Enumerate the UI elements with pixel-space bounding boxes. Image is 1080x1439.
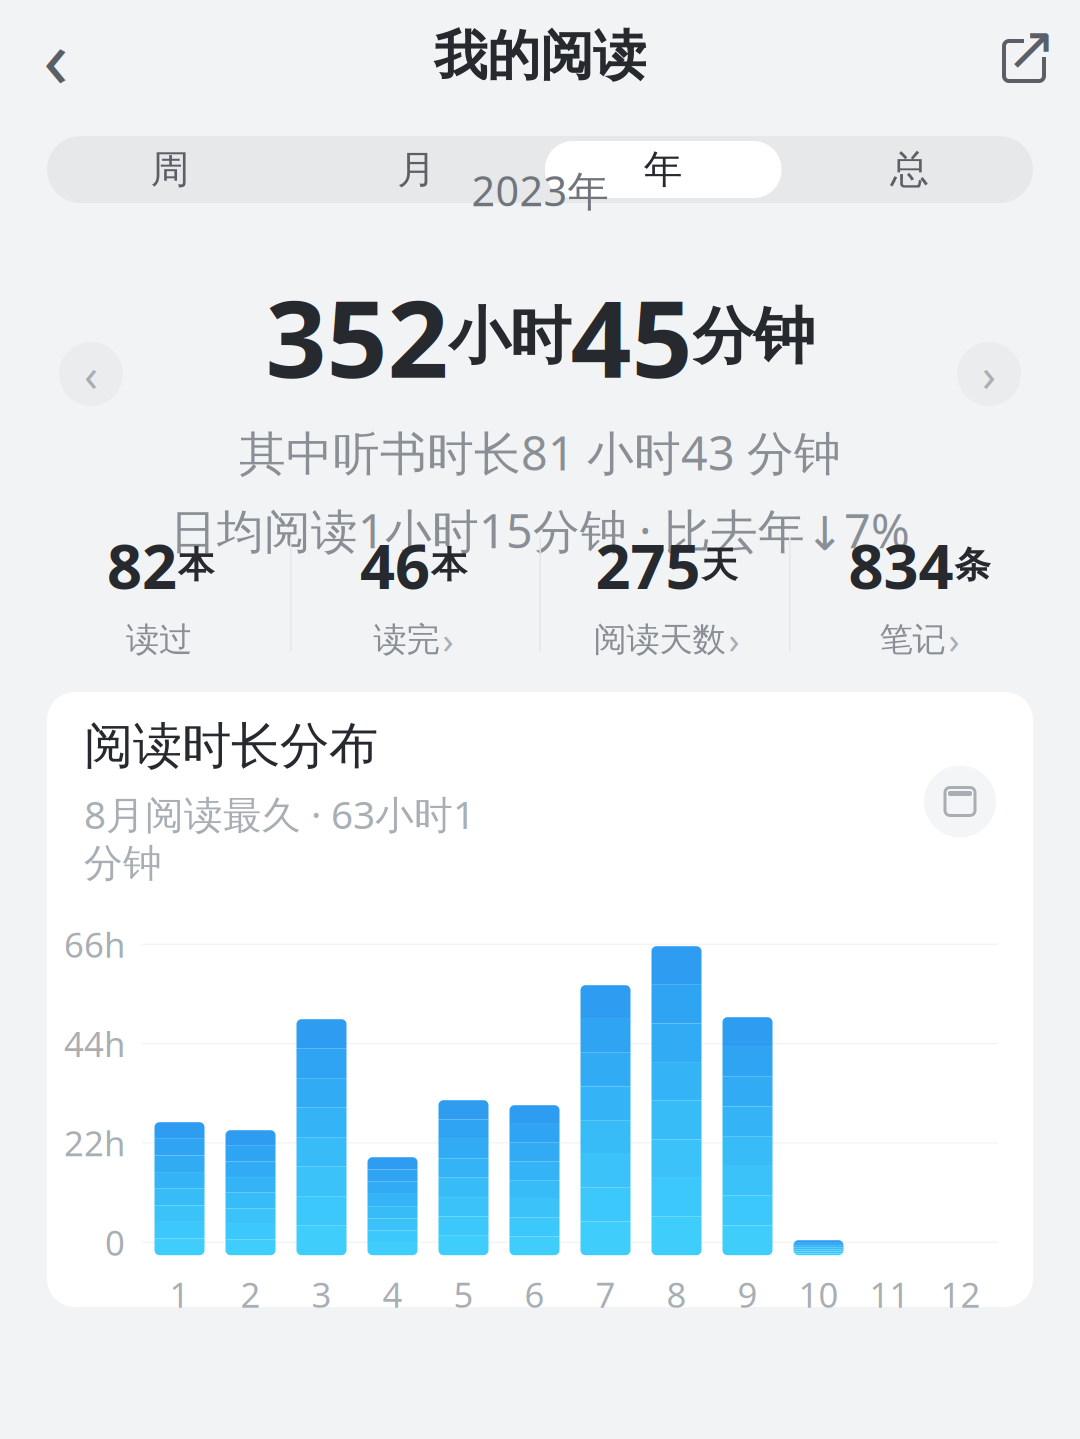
staticText: 46 (360, 524, 430, 606)
button[interactable]: Previous year (59, 342, 123, 406)
staticText: 6 (524, 1271, 544, 1317)
staticText: 阅读时长分布 (84, 716, 378, 776)
staticText: 年 (644, 146, 683, 193)
staticText: 本 (431, 543, 467, 587)
staticText: 12 (940, 1271, 980, 1317)
staticText: ‹ (43, 1, 69, 111)
staticText: 8月阅读最久 · 63小时1分钟 (84, 788, 475, 887)
staticText: 9 (737, 1271, 757, 1317)
staticText: 2023年 (471, 163, 608, 218)
staticText: 日均阅读1小时15分钟 · 比去年↓7% (170, 499, 910, 561)
staticText: 天 (701, 543, 737, 587)
button[interactable]: 834 (793, 535, 1046, 653)
button[interactable]: 82 (34, 535, 287, 653)
staticText: 4 (382, 1271, 402, 1317)
staticText: ↗ (1005, 13, 1056, 83)
staticText: 44h (64, 1020, 125, 1066)
staticText: 5 (453, 1271, 473, 1317)
staticText: 分钟 (692, 299, 814, 374)
staticText: ‹ (84, 344, 98, 404)
staticText: 条 (954, 543, 990, 587)
button[interactable]: Share (988, 20, 1060, 92)
staticText: 小时 (448, 299, 570, 374)
staticText: 周 (151, 146, 190, 193)
staticText: 本 (178, 543, 214, 587)
staticText: 2 (240, 1271, 260, 1317)
staticText: 1 (169, 1271, 189, 1317)
button[interactable]: Calendar (924, 765, 996, 837)
staticText: 总 (890, 146, 929, 193)
button[interactable]: 周 (47, 136, 293, 203)
staticText: 读完 (373, 619, 439, 660)
staticText: 45 (570, 266, 692, 407)
staticText: › (728, 616, 739, 664)
staticText: 10 (798, 1271, 838, 1317)
staticText: › (948, 616, 959, 664)
staticText: 275 (595, 524, 700, 606)
staticText: 我的阅读 (434, 23, 646, 89)
button[interactable]: Next year (957, 342, 1021, 406)
staticText: 22h (64, 1120, 125, 1166)
staticText: 8 (666, 1271, 686, 1317)
staticText: 3 (311, 1271, 331, 1317)
staticText: 0 (105, 1219, 125, 1265)
staticText: 笔记 (879, 619, 945, 660)
staticText: 82 (107, 524, 177, 606)
staticText: 读过 (126, 619, 192, 660)
staticText: › (442, 616, 453, 664)
staticText: 11 (869, 1271, 909, 1317)
staticText: 352 (265, 266, 448, 407)
staticText: 834 (848, 524, 953, 606)
button[interactable]: 总 (786, 136, 1033, 203)
button[interactable]: Back (20, 20, 92, 92)
staticText: 66h (64, 921, 125, 967)
staticText: 其中听书时长81 小时43 分钟 (239, 421, 841, 483)
button[interactable]: 46 (287, 535, 540, 653)
staticText: › (982, 344, 996, 404)
staticText: 月 (397, 146, 436, 193)
staticText: 阅读天数 (593, 619, 725, 660)
staticText: 7 (595, 1271, 615, 1317)
button[interactable]: 月 (293, 136, 540, 203)
button[interactable]: 275 (540, 535, 793, 653)
button[interactable]: 年 (540, 136, 786, 203)
